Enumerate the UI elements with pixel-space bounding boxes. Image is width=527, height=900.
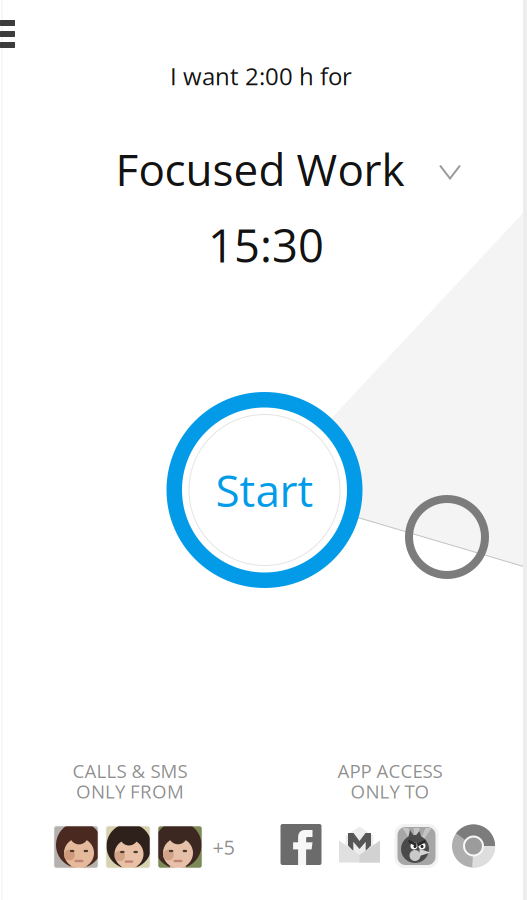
button[interactable]: Choose activity (439, 163, 461, 180)
button[interactable]: Chrome (451, 824, 495, 868)
button[interactable]: Start (166, 392, 362, 588)
staticText: ONLY TO (350, 778, 429, 804)
button[interactable]: Facebook (280, 824, 324, 868)
button[interactable]: Gmail (337, 824, 381, 868)
staticText: ONLY FROM (76, 778, 184, 804)
button[interactable]: Menu (0, 20, 15, 48)
staticText: +5 (212, 833, 234, 861)
staticText: APP ACCESS (337, 758, 442, 783)
button[interactable]: Adjust duration (401, 491, 493, 583)
staticText: 15:30 (208, 214, 324, 276)
button[interactable]: Allowed contacts (53, 825, 234, 868)
button[interactable]: Focused Work (115, 139, 404, 199)
staticText: Start (215, 460, 313, 520)
staticText: I want 2:00 h for (170, 60, 352, 92)
staticText: CALLS & SMS (72, 758, 187, 783)
button[interactable]: Angry Birds (394, 824, 438, 868)
staticText: Focused Work (115, 139, 404, 199)
